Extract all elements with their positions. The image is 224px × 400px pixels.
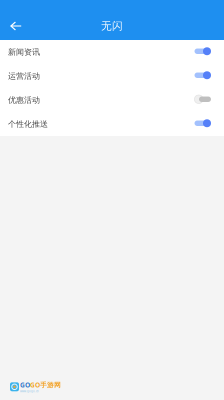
staticText: GO	[30, 381, 40, 389]
button[interactable]: 优惠活动	[0, 88, 224, 112]
staticText: 无闪	[101, 19, 123, 32]
button[interactable]: 个性化推送	[0, 112, 224, 136]
staticText: 手游网	[40, 381, 61, 389]
staticText: GO	[20, 381, 30, 389]
button[interactable]: 运营活动	[0, 64, 224, 88]
staticText: 新闻资讯	[8, 47, 40, 57]
staticText: 优惠活动	[8, 95, 40, 105]
button[interactable]: 新闻资讯	[0, 40, 224, 64]
staticText: www.gogo.cn	[20, 389, 39, 393]
staticText: 运营活动	[8, 71, 40, 81]
staticText: 个性化推送	[8, 119, 48, 129]
button[interactable]: Back	[0, 12, 30, 40]
